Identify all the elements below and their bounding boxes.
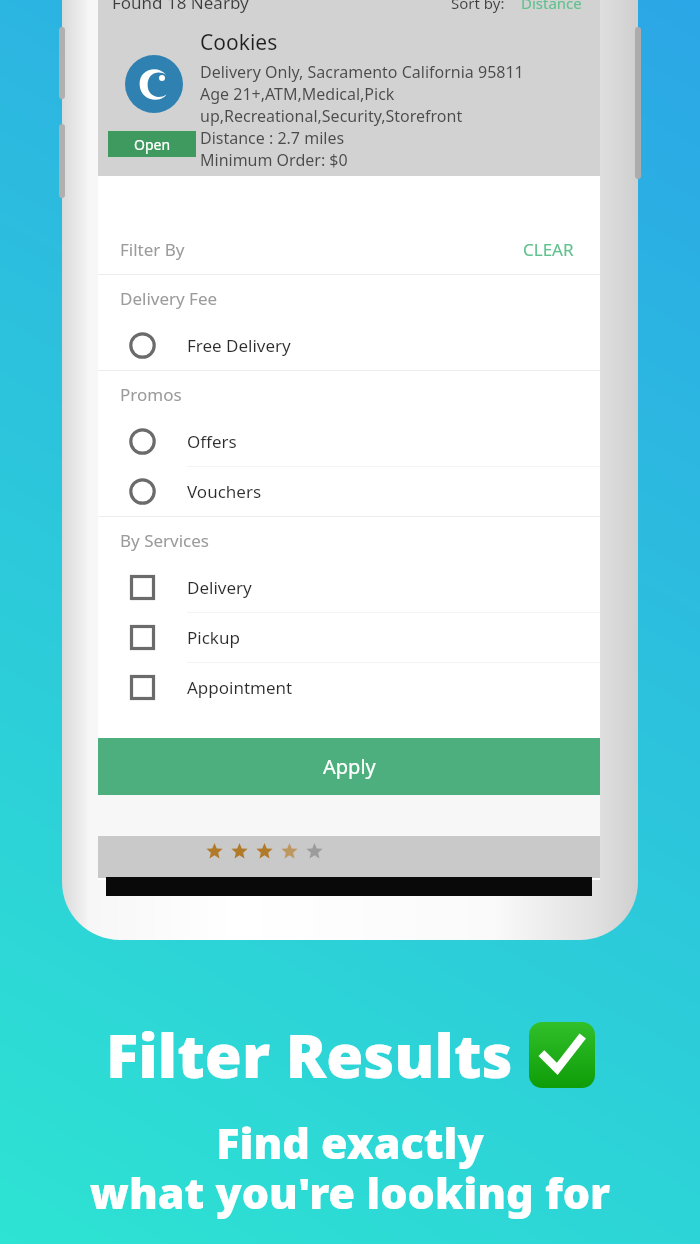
- staticText: Open: [134, 135, 171, 154]
- staticText: CLEAR: [523, 238, 574, 261]
- staticText: up,Recreational,Security,Storefront: [200, 105, 463, 127]
- staticText: Cookies: [200, 28, 278, 57]
- staticText: By Services: [120, 529, 209, 552]
- staticText: Filter Results: [106, 1014, 513, 1096]
- staticText: Distance: [521, 0, 582, 13]
- button[interactable]: Pickup: [98, 613, 600, 662]
- staticText: Find exactly: [0, 1113, 700, 1172]
- staticText: Apply: [323, 753, 376, 780]
- staticText: Delivery Fee: [120, 287, 218, 310]
- staticText: Found 18 Nearby: [112, 0, 249, 14]
- button[interactable]: Apply: [98, 738, 600, 795]
- staticText: Sort by:: [451, 0, 505, 13]
- staticText: what you're looking for: [0, 1163, 700, 1222]
- staticText: Age 21+,ATM,Medical,Pick: [200, 83, 395, 105]
- other: Check mark: [529, 1022, 595, 1088]
- staticText: Promos: [120, 383, 182, 406]
- button[interactable]: Vouchers: [98, 467, 600, 516]
- staticText: Free Delivery: [187, 334, 291, 357]
- button[interactable]: Free Delivery: [98, 321, 600, 370]
- staticText: Minimum Order: $0: [200, 149, 348, 171]
- button[interactable]: Delivery: [98, 563, 600, 612]
- staticText: Pickup: [187, 626, 240, 649]
- staticText: Delivery Only, Sacramento California 958…: [200, 61, 524, 83]
- staticText: Vouchers: [187, 480, 262, 503]
- staticText: Delivery: [187, 576, 252, 599]
- staticText: Filter By: [120, 238, 185, 261]
- button[interactable]: Offers: [98, 417, 600, 466]
- button[interactable]: Appointment: [98, 663, 600, 712]
- staticText: Offers: [187, 430, 237, 453]
- staticText: Appointment: [187, 676, 293, 699]
- staticText: Distance : 2.7 miles: [200, 127, 345, 149]
- button[interactable]: CLEAR: [519, 230, 578, 269]
